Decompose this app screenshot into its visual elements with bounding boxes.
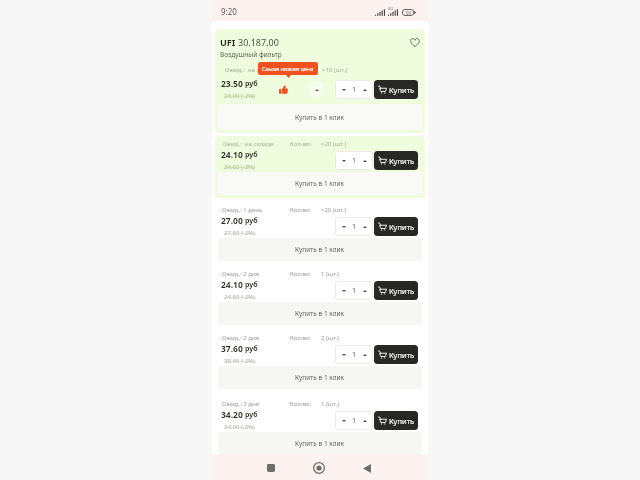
staticText: 1 (352, 416, 357, 426)
staticText: 24.00 (-2%) (224, 92, 255, 100)
staticText: 1 (352, 85, 357, 95)
staticText: 23.50 (221, 78, 243, 90)
staticText: 1 (352, 222, 357, 232)
button[interactable]: Recent apps (261, 458, 281, 478)
staticText: 1 (шт.) (321, 270, 340, 278)
button[interactable]: Decrease quantity (338, 221, 349, 232)
staticText: Самая низкая цена (262, 65, 314, 72)
staticText: Ожид.: 2 дня (222, 270, 260, 278)
staticText: Кол-во: (290, 206, 312, 214)
staticText: Кол-во: (290, 140, 312, 148)
staticText: 34.20 (221, 409, 243, 421)
staticText: руб (245, 344, 258, 354)
staticText: 38.40 (-2%) (224, 357, 255, 365)
button[interactable]: Купить (374, 217, 418, 236)
staticText: Кол-во: (290, 334, 312, 342)
staticText: Купить (389, 222, 415, 232)
button[interactable]: Самая низкая цена (258, 62, 318, 75)
button[interactable]: Decrease quantity (338, 349, 349, 360)
staticText: 9:20 (221, 6, 237, 17)
staticText: руб (245, 216, 258, 226)
button[interactable]: Купить в 1 клик (218, 366, 422, 389)
button[interactable]: Decrease quantity (338, 84, 349, 95)
staticText: руб (245, 150, 258, 160)
button[interactable]: Home (309, 458, 329, 478)
staticText: Купить в 1 клик (295, 439, 345, 448)
button[interactable]: Купить в 1 клик (218, 302, 422, 325)
staticText: Кол-во: (290, 400, 312, 408)
button[interactable]: Back (357, 458, 377, 478)
button[interactable]: Increase quantity (359, 84, 370, 95)
staticText: Купить (389, 156, 415, 166)
staticText: 2 (шт.) (321, 334, 340, 342)
button[interactable]: Decrease quantity (338, 285, 349, 296)
staticText: Купить в 1 клик (295, 179, 345, 188)
staticText: Воздушный фильтр (220, 50, 282, 59)
button[interactable]: Decrease quantity (338, 155, 349, 166)
staticText: 27.60 (-2%) (224, 229, 255, 237)
staticText: 1 (352, 350, 357, 360)
staticText: Купить (389, 286, 415, 296)
staticText: >20 (шт.) (321, 206, 346, 214)
button[interactable]: Increase quantity (359, 285, 370, 296)
staticText: Купить в 1 клик (295, 309, 345, 318)
button[interactable]: Decrease quantity (338, 415, 349, 426)
button[interactable]: Scroll up (310, 82, 323, 97)
staticText: руб (245, 410, 258, 420)
button[interactable]: Купить в 1 клик (218, 432, 422, 455)
staticText: 27.00 (221, 215, 243, 227)
button[interactable]: Increase quantity (359, 155, 370, 166)
button[interactable]: Купить в 1 клик (218, 238, 422, 261)
staticText: Ожид.: на складе (225, 66, 277, 74)
button[interactable]: Increase quantity (359, 415, 370, 426)
staticText: 24.60 (-2%) (224, 163, 255, 171)
staticText: 34.90 (-2%) (224, 423, 255, 431)
staticText: руб (245, 280, 258, 290)
staticText: 1 (шт.) (321, 400, 340, 408)
button[interactable]: Increase quantity (359, 221, 370, 232)
staticText: 24.10 (221, 149, 243, 161)
staticText: руб (245, 79, 258, 89)
button[interactable]: Купить (374, 281, 418, 300)
staticText: 24.10 (221, 279, 243, 291)
button[interactable]: Купить в 1 клик (218, 172, 422, 195)
staticText: Ожид.: 2 дня (222, 334, 260, 342)
staticText: >10 (шт.) (322, 66, 347, 74)
staticText: 99 (406, 10, 412, 16)
button[interactable]: Add to favorites (408, 35, 422, 49)
staticText: Купить (389, 416, 415, 426)
staticText: Купить в 1 клик (295, 113, 345, 122)
button[interactable]: Купить в 1 клик (218, 104, 422, 130)
staticText: >20 (шт.) (321, 140, 346, 148)
staticText: Купить в 1 клик (295, 245, 345, 254)
staticText: UFI (220, 36, 236, 48)
staticText: 37.60 (221, 343, 243, 355)
staticText: 1 (352, 156, 357, 166)
button[interactable]: Increase quantity (359, 349, 370, 360)
staticText: 30.187.00 (238, 36, 279, 48)
staticText: Купить (389, 85, 415, 95)
staticText: 1 (352, 286, 357, 296)
staticText: Купить в 1 клик (295, 373, 345, 382)
staticText: Ожид.: 3 дня (222, 400, 260, 408)
staticText: 4G (388, 6, 394, 11)
button[interactable]: Купить (374, 345, 418, 364)
staticText: Ожид.: на складе (222, 140, 274, 148)
button[interactable]: Купить (374, 80, 418, 99)
button[interactable]: Купить (374, 151, 418, 170)
staticText: 24.60 (-2%) (224, 293, 255, 301)
staticText: Ожид.: 1 день (222, 206, 263, 214)
staticText: Купить (389, 350, 415, 360)
button[interactable]: Купить (374, 411, 418, 430)
staticText: Кол-во: (290, 270, 312, 278)
